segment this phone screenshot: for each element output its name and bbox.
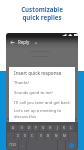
staticText: C bbox=[31, 134, 34, 138]
button[interactable]: G bbox=[40, 125, 46, 131]
button[interactable]: More options bbox=[33, 40, 38, 45]
staticText: B bbox=[47, 134, 50, 138]
button[interactable]: K bbox=[61, 125, 67, 131]
staticText: Reply bbox=[18, 39, 30, 45]
button[interactable]: L bbox=[68, 125, 74, 131]
button[interactable]: J bbox=[54, 125, 60, 131]
staticText: Let's set up a meeting to discuss this bbox=[14, 108, 75, 118]
staticText: G bbox=[42, 126, 45, 130]
staticText: J bbox=[57, 126, 58, 130]
staticText: . bbox=[61, 143, 62, 147]
button[interactable]: Thanks! bbox=[14, 78, 75, 88]
staticText: Customizable bbox=[21, 5, 63, 13]
staticText: , bbox=[22, 143, 23, 147]
button[interactable]: H bbox=[47, 125, 53, 131]
button[interactable]: , bbox=[19, 140, 26, 150]
button[interactable]: I'll call you later and get back bbox=[14, 98, 75, 108]
staticText: Z bbox=[17, 134, 19, 138]
button[interactable]: D bbox=[26, 125, 32, 131]
button[interactable]: N bbox=[53, 132, 60, 140]
staticText: D bbox=[28, 126, 31, 130]
staticText: M bbox=[63, 134, 66, 138]
button[interactable]: Back bbox=[9, 39, 16, 46]
staticText: A bbox=[12, 126, 15, 130]
button[interactable]: Z bbox=[15, 132, 21, 140]
staticText: F bbox=[35, 126, 37, 130]
staticText: Sounds good to me! bbox=[14, 90, 53, 96]
button[interactable]: A bbox=[10, 125, 17, 131]
staticText: H bbox=[49, 126, 52, 130]
staticText: S bbox=[21, 126, 23, 130]
staticText: quick replies bbox=[22, 13, 62, 21]
button[interactable]: ?123 bbox=[7, 140, 18, 150]
staticText: L bbox=[70, 126, 72, 130]
button[interactable]: C bbox=[29, 132, 36, 140]
button[interactable]: Let's set up a meeting to discuss this bbox=[14, 108, 75, 118]
staticText: X bbox=[24, 134, 26, 138]
staticText: V bbox=[40, 134, 42, 138]
staticText: Insert quick response bbox=[14, 70, 62, 76]
button[interactable]: Sounds good to me! bbox=[14, 88, 75, 98]
button[interactable]: M bbox=[61, 132, 68, 140]
staticText: I'll call you later and get back bbox=[14, 100, 70, 106]
button[interactable]: Send bbox=[69, 143, 74, 148]
staticText: Thanks! bbox=[14, 80, 29, 86]
staticText: ?123 bbox=[9, 143, 16, 147]
button[interactable]: X bbox=[22, 132, 28, 140]
button[interactable]: V bbox=[37, 132, 44, 140]
button[interactable]: S bbox=[18, 125, 25, 131]
button[interactable]: F bbox=[33, 125, 39, 131]
staticText: N bbox=[55, 134, 58, 138]
staticText: K bbox=[63, 126, 65, 130]
button[interactable]: B bbox=[45, 132, 52, 140]
